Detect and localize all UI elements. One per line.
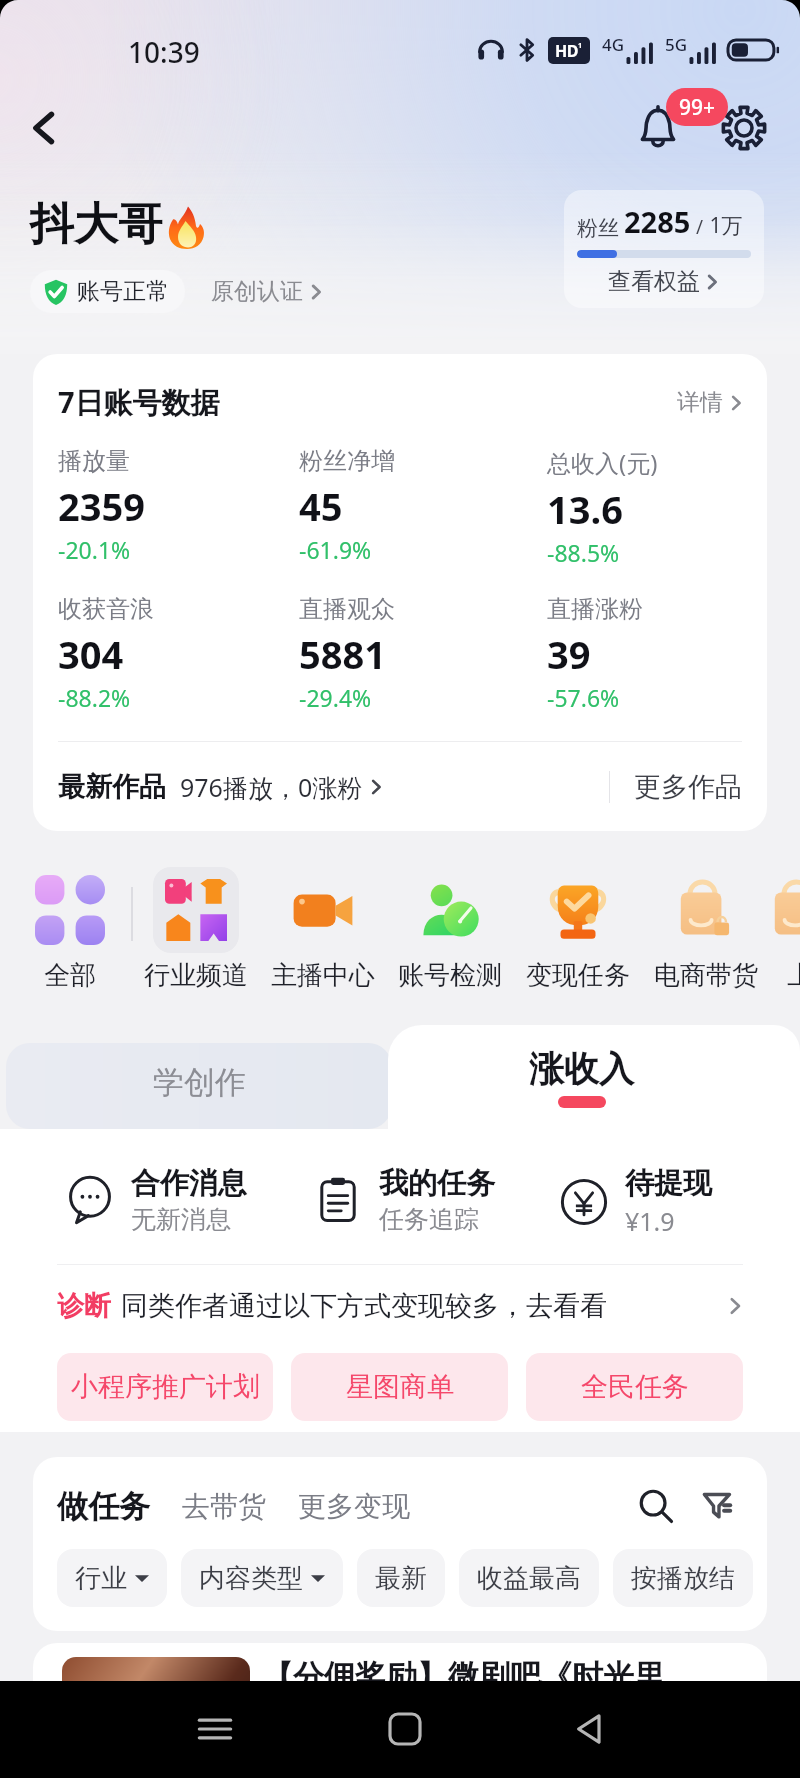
staticText: 任务追踪 <box>379 1204 479 1235</box>
button[interactable]: 做任务 <box>57 1487 150 1526</box>
button[interactable]: 变现任务 <box>515 867 641 992</box>
button[interactable]: 全民任务 <box>526 1353 743 1421</box>
staticText: 收获音浪 <box>58 594 154 624</box>
staticText: 45 <box>299 480 343 532</box>
staticText: -61.9% <box>299 534 372 565</box>
staticText: 7日账号数据 <box>58 382 220 422</box>
staticText: 收益最高 <box>477 1562 581 1595</box>
staticText: 无新消息 <box>131 1204 231 1235</box>
button[interactable]: 待提现 <box>527 1165 727 1238</box>
staticText: -57.6% <box>547 682 620 713</box>
button[interactable]: 内容类型 <box>181 1549 343 1607</box>
staticText: 涨收入 <box>529 1047 634 1091</box>
staticText: 304 <box>58 628 124 680</box>
staticText: 详情 <box>677 388 723 417</box>
button[interactable]: 账号检测 <box>387 867 513 992</box>
staticText: 全民任务 <box>581 1370 689 1404</box>
staticText: 诊断 <box>57 1289 111 1323</box>
staticText: 39 <box>547 628 591 680</box>
staticText: 10:39 <box>128 33 200 71</box>
staticText: 行业 <box>75 1562 127 1595</box>
staticText: -88.5% <box>547 537 620 568</box>
staticText: 内容类型 <box>199 1562 303 1595</box>
staticText: 查看权益 <box>608 267 700 296</box>
button[interactable]: 主播中心 <box>260 867 386 992</box>
staticText: -88.2% <box>58 682 131 713</box>
staticText: 星图商单 <box>346 1370 454 1404</box>
staticText: 主播中心 <box>271 959 375 992</box>
staticText: 1 <box>578 41 583 51</box>
staticText: 账号正常 <box>77 277 169 306</box>
staticText: 直播涨粉 <box>547 594 643 624</box>
staticText: 【分佣奖励】微剧吧《时光里 <box>262 1657 665 1696</box>
staticText: 99+ <box>679 93 716 122</box>
staticText: 4G <box>602 33 625 56</box>
staticText: 13.6 <box>547 483 623 535</box>
staticText: 2359 <box>58 480 145 532</box>
staticText: 学创作 <box>153 1063 246 1102</box>
staticText: HD <box>555 40 578 62</box>
button[interactable]: 行业频道 <box>133 867 259 992</box>
staticText: 粉丝净增 <box>299 446 395 476</box>
button[interactable]: 全部 <box>7 867 133 992</box>
button[interactable]: Notifications <box>626 96 690 160</box>
staticText: 按播放结 <box>631 1562 735 1595</box>
staticText: / <box>691 214 704 240</box>
staticText: ¥1.9 <box>625 1204 675 1238</box>
staticText: 上 <box>787 959 800 992</box>
button[interactable]: Back <box>558 1697 622 1761</box>
staticText: 电商带货 <box>654 959 758 992</box>
button[interactable]: Back <box>14 98 74 158</box>
staticText: 总收入(元) <box>547 446 658 479</box>
staticText: 同类作者通过以下方式变现较多，去看看 <box>121 1289 607 1323</box>
staticText: 抖大哥 <box>30 197 162 252</box>
button[interactable]: 上 <box>737 867 800 992</box>
staticText: 976播放，0涨粉 <box>180 770 363 804</box>
staticText: 5G <box>665 33 688 56</box>
staticText: 1万 <box>704 211 743 240</box>
staticText: 我的任务 <box>379 1165 495 1202</box>
button[interactable]: 按播放结 <box>613 1549 753 1607</box>
button[interactable]: 行业 <box>57 1549 167 1607</box>
staticText: 2285 <box>624 202 691 241</box>
button[interactable]: 原创认证 <box>211 277 325 306</box>
staticText: 最新 <box>375 1562 427 1595</box>
staticText: 账号检测 <box>398 959 502 992</box>
staticText: -29.4% <box>299 682 372 713</box>
staticText: 最新作品 <box>58 770 166 804</box>
button[interactable]: 账号正常 <box>30 270 185 313</box>
button[interactable]: 学创作 <box>6 1043 392 1129</box>
button[interactable]: 涨收入 <box>388 1025 800 1129</box>
staticText: 粉丝 <box>577 215 619 241</box>
staticText: 小程序推广计划 <box>71 1370 260 1404</box>
button[interactable]: 最新 <box>357 1549 445 1607</box>
button[interactable]: Filter <box>695 1481 745 1531</box>
staticText: 原创认证 <box>211 277 303 306</box>
staticText: 播放量 <box>58 446 130 476</box>
button[interactable]: 去带货 <box>182 1489 266 1524</box>
button[interactable]: 合作消息 <box>33 1165 281 1235</box>
button[interactable]: 更多变现 <box>298 1489 410 1524</box>
staticText: 变现任务 <box>526 959 630 992</box>
button[interactable]: 我的任务 <box>281 1165 527 1235</box>
button[interactable]: 收益最高 <box>459 1549 599 1607</box>
button[interactable]: Settings <box>712 96 776 160</box>
staticText: 待提现 <box>625 1165 712 1202</box>
button[interactable]: 电商带货 <box>643 867 769 992</box>
button[interactable]: Home <box>373 1697 437 1761</box>
staticText: 直播观众 <box>299 594 395 624</box>
button[interactable]: 小程序推广计划 <box>57 1353 273 1421</box>
staticText: -20.1% <box>58 534 131 565</box>
staticText: 合作消息 <box>131 1165 247 1202</box>
button[interactable]: 粉丝 <box>564 190 764 308</box>
staticText: 5881 <box>299 628 386 680</box>
button[interactable]: 诊断 <box>57 1265 745 1347</box>
staticText: 全部 <box>44 959 96 992</box>
button[interactable]: 星图商单 <box>291 1353 508 1421</box>
button[interactable]: 详情 <box>677 388 745 417</box>
button[interactable]: 更多作品 <box>634 770 742 804</box>
staticText: 行业频道 <box>144 959 248 992</box>
button[interactable]: Recents <box>183 1697 247 1761</box>
button[interactable]: 最新作品 <box>58 770 385 804</box>
button[interactable]: Search <box>631 1481 681 1531</box>
